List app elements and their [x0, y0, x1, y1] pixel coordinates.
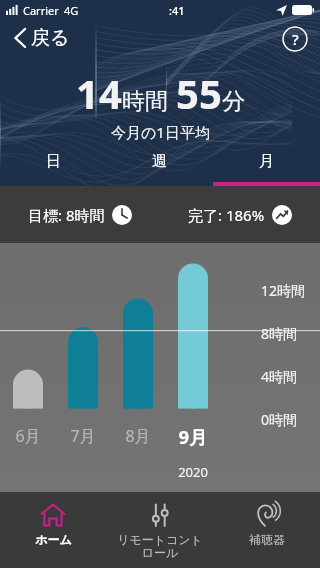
- button[interactable]: 完了: 186%: [160, 186, 320, 243]
- staticText: :41: [169, 3, 185, 18]
- staticText: ?: [292, 29, 299, 49]
- button[interactable]: 戻る: [8, 22, 76, 54]
- button[interactable]: ホーム: [0, 492, 106, 568]
- staticText: 4G: [64, 3, 79, 18]
- staticText: 14: [76, 66, 122, 120]
- staticText: 時間: [122, 87, 168, 116]
- staticText: 週: [152, 152, 167, 171]
- staticText: 日: [46, 152, 61, 171]
- staticText: 目標: 8時間: [28, 205, 105, 225]
- staticText: 月: [259, 152, 274, 171]
- staticText: 0時間: [261, 410, 298, 429]
- button[interactable]: 目標: 8時間: [0, 186, 160, 243]
- staticText: 6月: [6, 425, 50, 447]
- staticText: 4時間: [261, 367, 298, 386]
- button[interactable]: リモートコント ロール: [106, 492, 213, 568]
- staticText: 55: [176, 66, 222, 120]
- staticText: Carrier: [23, 3, 59, 18]
- staticText: 補聴器: [249, 532, 285, 547]
- staticText: ホーム: [35, 532, 72, 547]
- button[interactable]: 週: [106, 146, 213, 186]
- staticText: 分: [222, 87, 245, 116]
- button[interactable]: 日: [0, 146, 106, 186]
- button[interactable]: Help: [282, 26, 308, 52]
- staticText: 戻る: [31, 26, 70, 50]
- staticText: 12時間: [261, 281, 306, 300]
- staticText: 8月: [116, 425, 160, 447]
- staticText: 9月: [171, 425, 215, 450]
- staticText: 2020: [171, 463, 215, 481]
- staticText: リモートコント ロール: [117, 532, 203, 561]
- staticText: 完了: 186%: [188, 205, 265, 225]
- staticText: 今月の1日平均: [111, 122, 210, 142]
- staticText: 8時間: [261, 324, 298, 343]
- staticText: 7月: [61, 425, 105, 447]
- button[interactable]: 月: [213, 146, 320, 186]
- button[interactable]: 補聴器: [213, 492, 320, 568]
